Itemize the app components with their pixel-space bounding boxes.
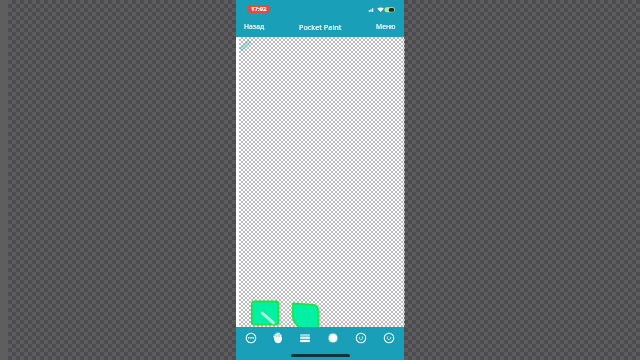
button[interactable]: Color picker (323, 328, 343, 348)
button[interactable]: Redo (379, 328, 399, 348)
staticText: Назад (244, 22, 265, 31)
button[interactable]: Назад (236, 18, 273, 35)
staticText: Меню (376, 22, 396, 31)
staticText: Pocket Paint (299, 22, 342, 32)
button[interactable]: Pan tool (268, 328, 288, 348)
button[interactable]: Layers (295, 328, 315, 348)
button[interactable]: Undo (351, 328, 371, 348)
button[interactable]: More options (241, 328, 261, 348)
button[interactable]: Меню (368, 18, 404, 35)
staticText: 17:02 (251, 5, 267, 13)
